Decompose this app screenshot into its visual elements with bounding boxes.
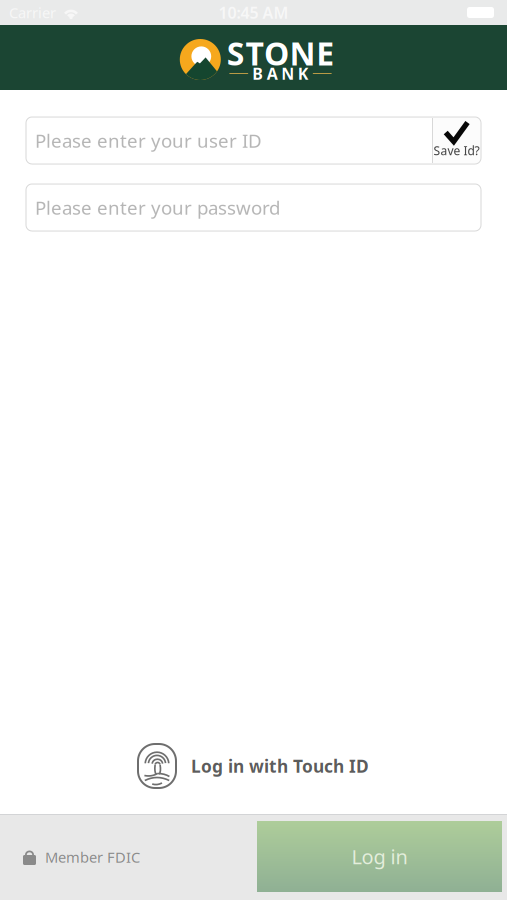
button[interactable]: Log in with Touch ID (138, 744, 369, 814)
staticText: Save Id? (433, 142, 479, 158)
staticText: Please enter your user ID (35, 128, 262, 153)
staticText: 10:45 AM (218, 2, 288, 23)
button[interactable]: Log in (257, 821, 502, 892)
staticText: Log in (351, 843, 407, 870)
staticText: BANK (252, 63, 309, 84)
staticText: Log in with Touch ID (191, 754, 369, 777)
staticText: Please enter your password (35, 195, 280, 220)
staticText: STONE (227, 32, 334, 74)
button[interactable]: Save Id? (433, 118, 480, 163)
staticText: Carrier (9, 3, 56, 22)
staticText: Member FDIC (45, 847, 140, 867)
